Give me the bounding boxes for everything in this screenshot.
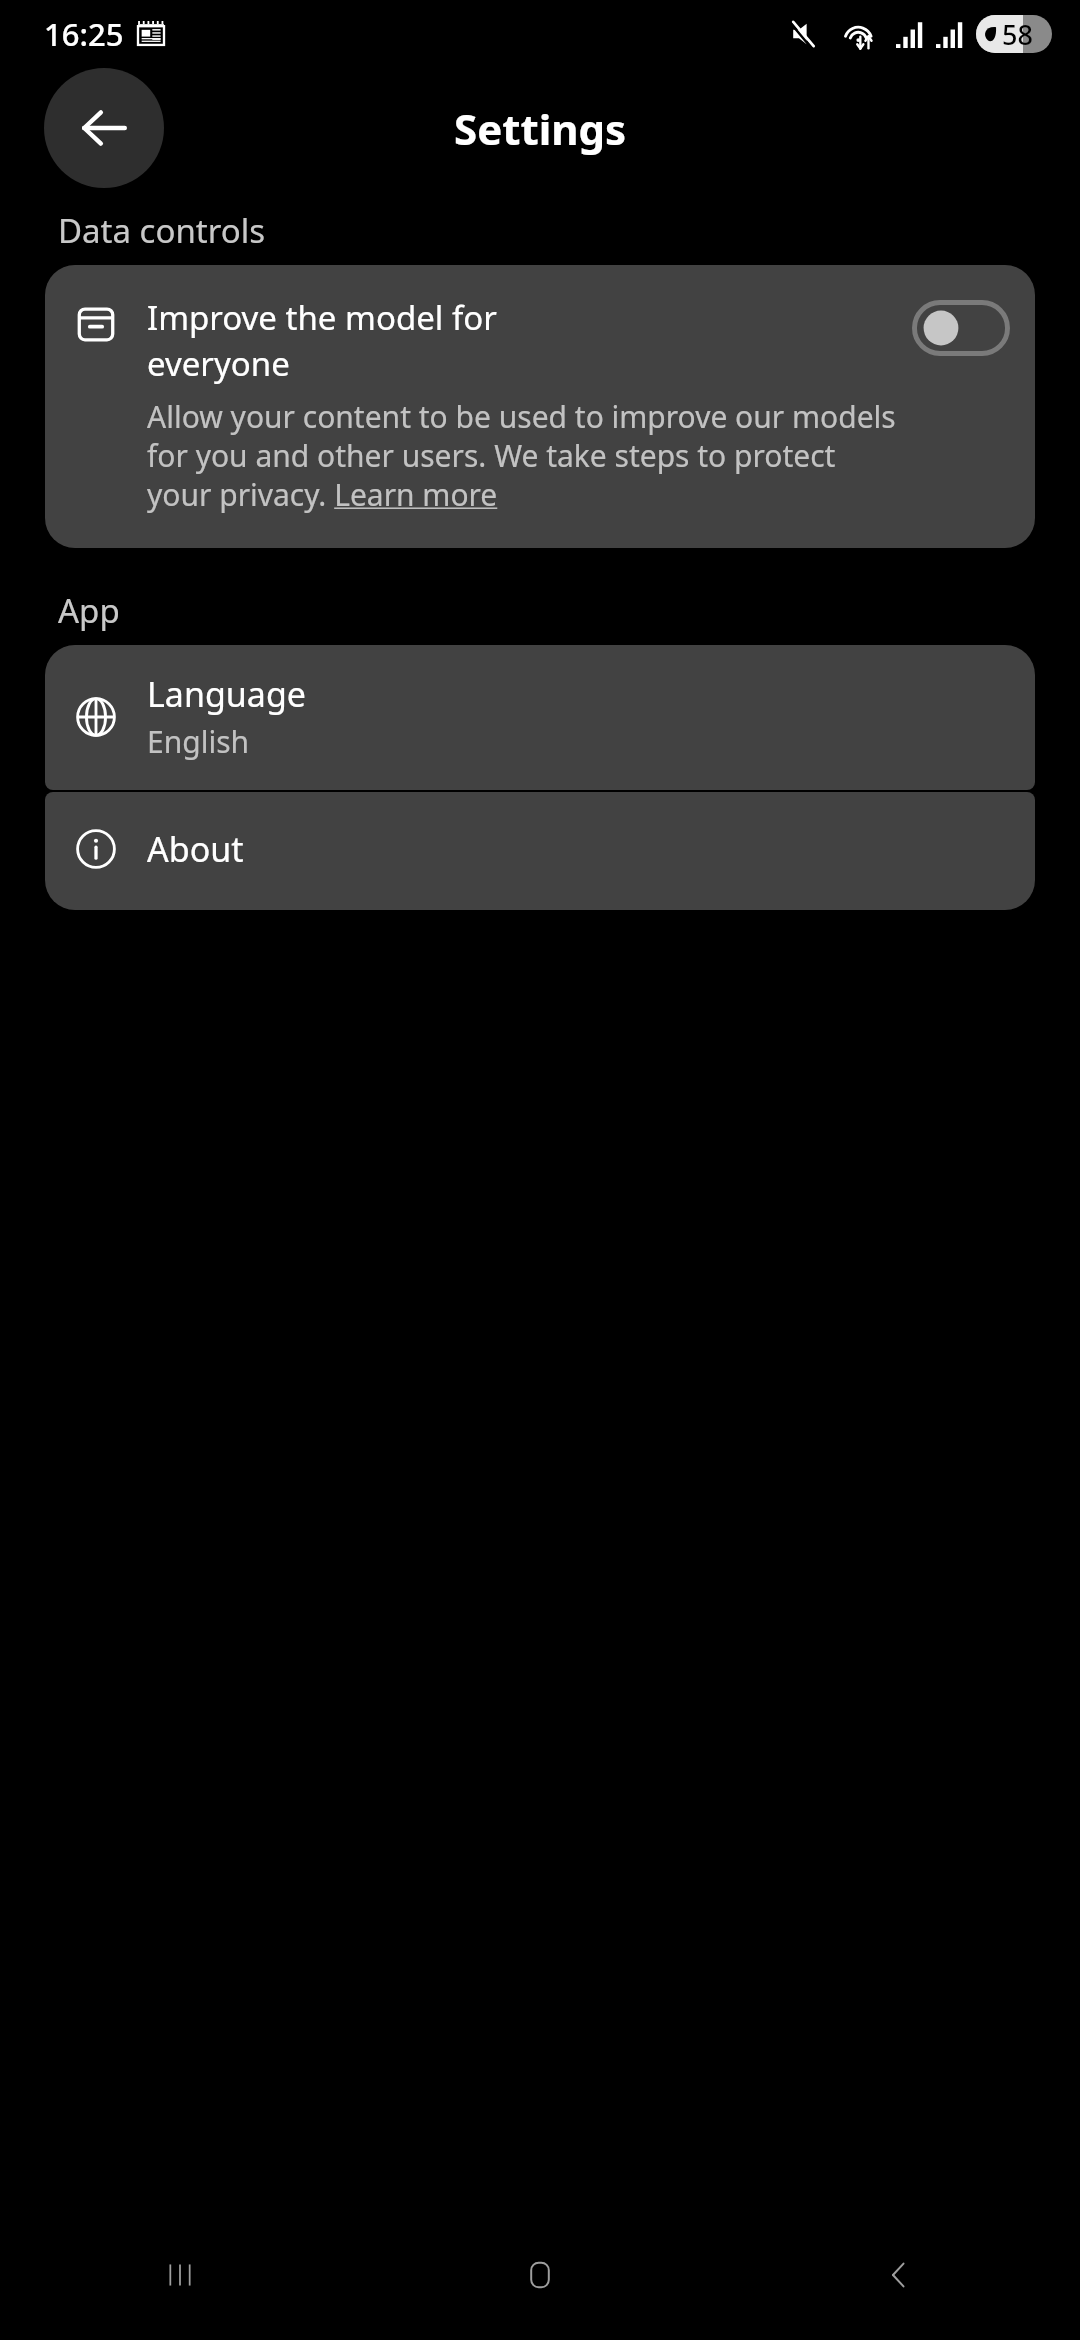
staticText: Data controls <box>58 208 265 253</box>
button[interactable]: Back <box>44 68 164 188</box>
staticText: 58 <box>1002 16 1033 53</box>
staticText: Allow your content to be used to improve… <box>147 396 899 514</box>
button[interactable]: Language <box>45 645 1035 790</box>
staticText: About <box>147 826 244 872</box>
button[interactable]: About <box>45 792 1035 910</box>
staticText: App <box>58 588 120 633</box>
staticText: English <box>147 721 250 762</box>
staticText: Improve the model for everyone <box>147 295 497 386</box>
staticText: Settings <box>454 100 627 157</box>
button[interactable]: Improve the model for everyone <box>45 265 1035 548</box>
button[interactable]: Back <box>720 2210 1080 2340</box>
button[interactable]: Home <box>360 2210 720 2340</box>
button[interactable]: Recents <box>0 2210 360 2340</box>
button[interactable]: Improve the model for everyone toggle <box>911 299 1011 357</box>
staticText: 16:25 <box>44 13 124 55</box>
staticText: Language <box>147 671 306 717</box>
